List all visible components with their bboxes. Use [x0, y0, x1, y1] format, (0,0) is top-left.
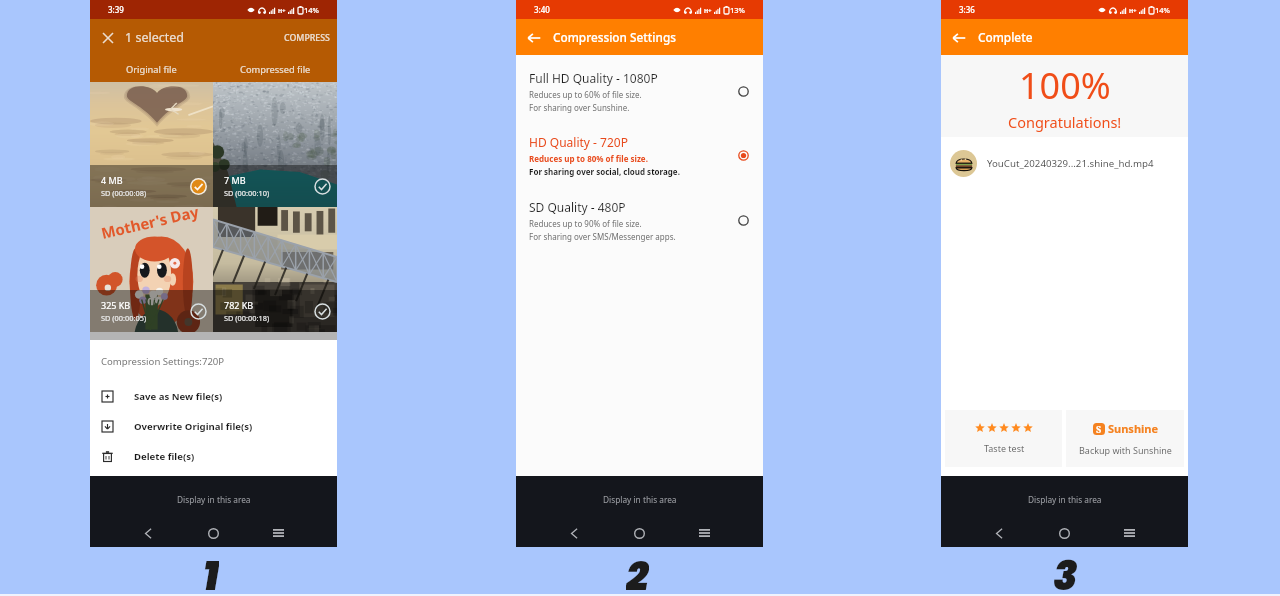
staticText: S: [1096, 423, 1102, 435]
button[interactable]: Back: [941, 20, 976, 55]
button[interactable]: COMPRESS: [277, 26, 337, 50]
button[interactable]: YouCut_20240329...21.shine_hd.mp4: [941, 143, 1188, 183]
staticText: 782 KB: [224, 299, 254, 311]
staticText: Reduces up to 90% of file size.: [529, 218, 642, 229]
button[interactable]: Delete file(s): [90, 441, 337, 471]
button[interactable]: Compressed file: [213, 56, 337, 82]
staticText: SD (00:00:10): [224, 188, 270, 198]
staticText: SD (00:00:18): [224, 313, 270, 323]
staticText: Compression Settings: [553, 29, 676, 45]
button[interactable]: Recent apps: [246, 519, 311, 547]
staticText: Compressed file: [240, 63, 311, 76]
staticText: 3: [1053, 548, 1078, 595]
staticText: 1 selected: [125, 29, 184, 46]
staticText: Congratulations!: [1008, 112, 1122, 132]
button[interactable]: Back: [542, 519, 607, 547]
staticText: 2: [626, 548, 649, 595]
staticText: Display in this area: [177, 494, 251, 505]
button[interactable]: Home: [181, 519, 246, 547]
staticText: H+: [278, 7, 286, 14]
button[interactable]: Close: [90, 20, 125, 55]
button[interactable]: 782 KB: [213, 207, 337, 332]
button[interactable]: 4 MB: [90, 82, 213, 207]
staticText: SD Quality - 480P: [529, 199, 626, 215]
staticText: YouCut_20240329...21.shine_hd.mp4: [987, 157, 1154, 170]
staticText: For sharing over social, cloud storage.: [529, 166, 680, 177]
staticText: Overwrite Original file(s): [134, 420, 253, 433]
button[interactable]: Home: [1032, 519, 1097, 547]
staticText: 3:36: [959, 4, 975, 15]
staticText: Full HD Quality - 1080P: [529, 70, 658, 86]
button[interactable]: Recent apps: [672, 519, 737, 547]
button[interactable]: Back: [967, 519, 1032, 547]
staticText: Reduces up to 80% of file size.: [529, 153, 648, 164]
staticText: Sunshine: [1108, 421, 1159, 436]
staticText: 100%: [1019, 61, 1111, 110]
staticText: Delete file(s): [134, 450, 195, 463]
staticText: H+: [704, 7, 712, 14]
button[interactable]: Full HD Quality - 1080P: [516, 70, 763, 113]
staticText: Save as New file(s): [134, 390, 223, 403]
staticText: For sharing over SMS/Messenger apps.: [529, 231, 676, 242]
staticText: Mother's Day: [99, 207, 201, 243]
button[interactable]: S: [1066, 410, 1184, 467]
button[interactable]: Overwrite Original file(s): [90, 411, 337, 441]
staticText: Backup with Sunshine: [1079, 444, 1172, 456]
staticText: 13%: [730, 5, 745, 15]
staticText: Display in this area: [1028, 494, 1102, 505]
button[interactable]: HD Quality - 720P: [516, 134, 763, 177]
staticText: Reduces up to 60% of file size.: [529, 89, 642, 100]
staticText: Display in this area: [603, 494, 677, 505]
button[interactable]: Home: [607, 519, 672, 547]
button[interactable]: Back: [516, 20, 551, 55]
button[interactable]: Recent apps: [1097, 519, 1162, 547]
button[interactable]: Taste test: [945, 410, 1062, 467]
button[interactable]: 7 MB: [213, 82, 337, 207]
staticText: H+: [1129, 7, 1137, 14]
staticText: Compression Settings:720P: [101, 355, 225, 368]
staticText: Complete: [978, 29, 1033, 45]
button[interactable]: Mother's Day: [90, 207, 213, 332]
staticText: 3:39: [108, 4, 124, 15]
button[interactable]: SD Quality - 480P: [516, 199, 763, 242]
button[interactable]: Back: [116, 519, 181, 547]
staticText: COMPRESS: [284, 32, 330, 44]
staticText: 7 MB: [224, 174, 246, 186]
staticText: 4 MB: [101, 174, 123, 186]
staticText: 14%: [1155, 5, 1170, 15]
staticText: For sharing over Sunshine.: [529, 102, 630, 113]
staticText: 14%: [304, 5, 319, 15]
staticText: SD (00:00:05): [101, 313, 147, 323]
staticText: 325 KB: [101, 299, 131, 311]
staticText: SD (00:00:08): [101, 188, 147, 198]
staticText: 1: [203, 548, 219, 595]
button[interactable]: Save as New file(s): [90, 381, 337, 411]
staticText: 3:40: [534, 4, 550, 15]
staticText: Taste test: [984, 442, 1025, 454]
staticText: Original file: [126, 63, 177, 76]
staticText: HD Quality - 720P: [529, 134, 628, 150]
button[interactable]: Original file: [90, 56, 213, 82]
